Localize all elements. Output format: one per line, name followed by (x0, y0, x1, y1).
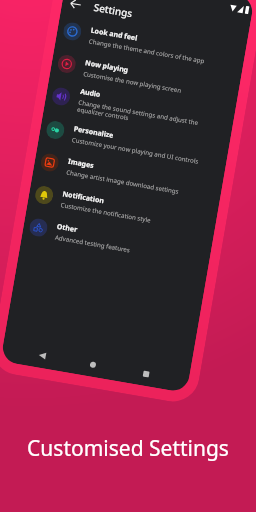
button[interactable]: Recents (138, 366, 153, 381)
staticText: Images (67, 157, 95, 171)
button[interactable]: Back (35, 348, 50, 363)
staticText: Customize your now playing and UI contro… (71, 135, 200, 165)
button[interactable]: Images (32, 145, 224, 207)
staticText: Now playing (84, 58, 129, 75)
staticText: Change artist image download settings (66, 168, 179, 195)
staticText: Customize the notification style (60, 200, 152, 224)
button[interactable]: Personalize (38, 113, 229, 174)
button[interactable]: Look and feel (55, 14, 246, 76)
button[interactable]: Now playing (49, 47, 241, 108)
staticText: Personalize (73, 124, 115, 141)
staticText: Change the theme and colors of the app (88, 36, 206, 64)
button[interactable]: Notification (27, 178, 218, 239)
staticText: Notification (62, 189, 105, 206)
button[interactable]: Other (21, 210, 212, 272)
staticText: Change the sound settings and adjust the… (77, 98, 225, 138)
button[interactable]: Back (65, 0, 86, 14)
staticText: Audio (79, 87, 102, 100)
staticText: Customise the now playing screen (83, 69, 183, 94)
button[interactable]: Audio (44, 79, 235, 141)
staticText: Customised Settings (0, 434, 256, 463)
button[interactable]: Home (85, 357, 100, 372)
staticText: Look and feel (90, 26, 138, 44)
staticText: Other (56, 222, 78, 235)
staticText: Settings (93, 0, 133, 20)
staticText: Advanced testing features (55, 233, 131, 253)
